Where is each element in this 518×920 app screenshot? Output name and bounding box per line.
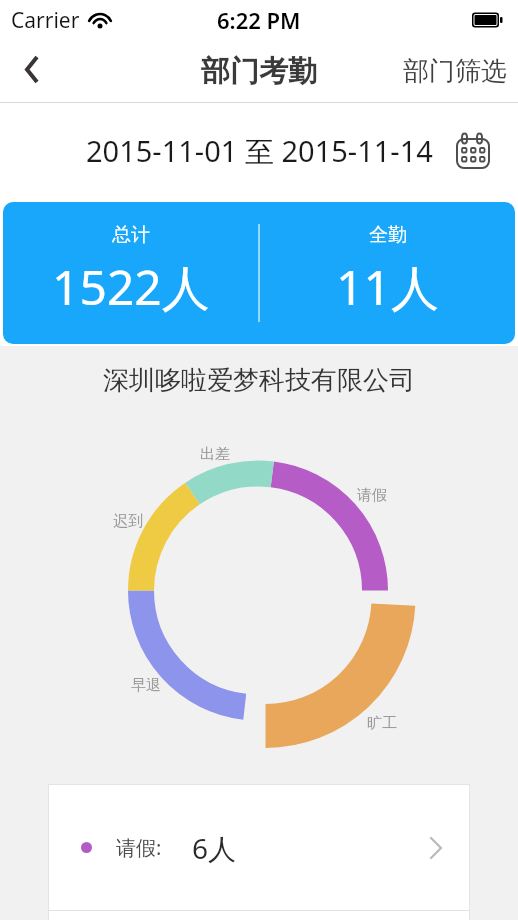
staticText: 出差 [200, 445, 230, 464]
staticText: 旷工 [367, 714, 397, 733]
button[interactable]: 全勤 [260, 202, 515, 344]
button[interactable]: 总计 [3, 202, 258, 344]
staticText: 2015-11-01 至 2015-11-14 [86, 131, 433, 171]
staticText: 部门筛选 [403, 55, 507, 88]
staticText: Carrier [11, 6, 80, 35]
staticText: 部门考勤 [201, 53, 317, 90]
button[interactable]: 请假: [49, 785, 469, 910]
staticText: 请假 [357, 486, 387, 505]
button[interactable] [0, 40, 58, 102]
staticText: 早退 [131, 676, 161, 695]
staticText: 6人 [192, 829, 237, 867]
staticText: 总计 [112, 223, 150, 247]
button[interactable]: 部门筛选 [392, 41, 518, 102]
staticText: 6:22 PM [217, 5, 301, 35]
staticText: 迟到 [113, 512, 143, 531]
staticText: 全勤 [369, 223, 407, 247]
button[interactable]: 2015-11-01 至 2015-11-14 [0, 103, 518, 198]
staticText: 1522人 [52, 254, 210, 320]
staticText: 11人 [336, 254, 439, 320]
staticText: 深圳哆啦爱梦科技有限公司 [0, 364, 518, 397]
staticText: 请假: [116, 834, 162, 861]
